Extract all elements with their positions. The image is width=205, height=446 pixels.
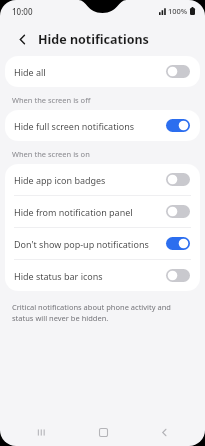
button[interactable]: Don't show pop-up notifications — [5, 228, 200, 259]
staticText: When the screen is off — [12, 95, 91, 105]
staticText: Hide app icon badges — [14, 174, 106, 186]
staticText: Hide status bar icons — [14, 270, 103, 282]
staticText: Hide notifications — [38, 31, 149, 48]
button[interactable]: Back — [11, 28, 33, 50]
button[interactable]: Hide full screen notifications — [5, 110, 200, 141]
staticText: 10:00 — [12, 6, 33, 17]
button[interactable]: Back — [144, 419, 184, 446]
button[interactable]: Hide status bar icons — [5, 260, 200, 291]
staticText: Hide from notification panel — [14, 206, 133, 218]
button[interactable]: Hide app icon badges — [5, 164, 200, 195]
staticText: Hide all — [14, 66, 46, 78]
staticText: Don't show pop-up notifications — [14, 238, 149, 250]
button[interactable]: Home — [83, 419, 123, 446]
staticText: Hide full screen notifications — [14, 120, 135, 132]
staticText: Critical notifications about phone activ… — [12, 302, 187, 323]
staticText: 100% — [168, 6, 188, 16]
button[interactable]: Hide all — [5, 56, 200, 87]
button[interactable]: Recent apps — [21, 419, 61, 446]
button[interactable]: Hide from notification panel — [5, 196, 200, 227]
staticText: When the screen is on — [12, 149, 90, 159]
